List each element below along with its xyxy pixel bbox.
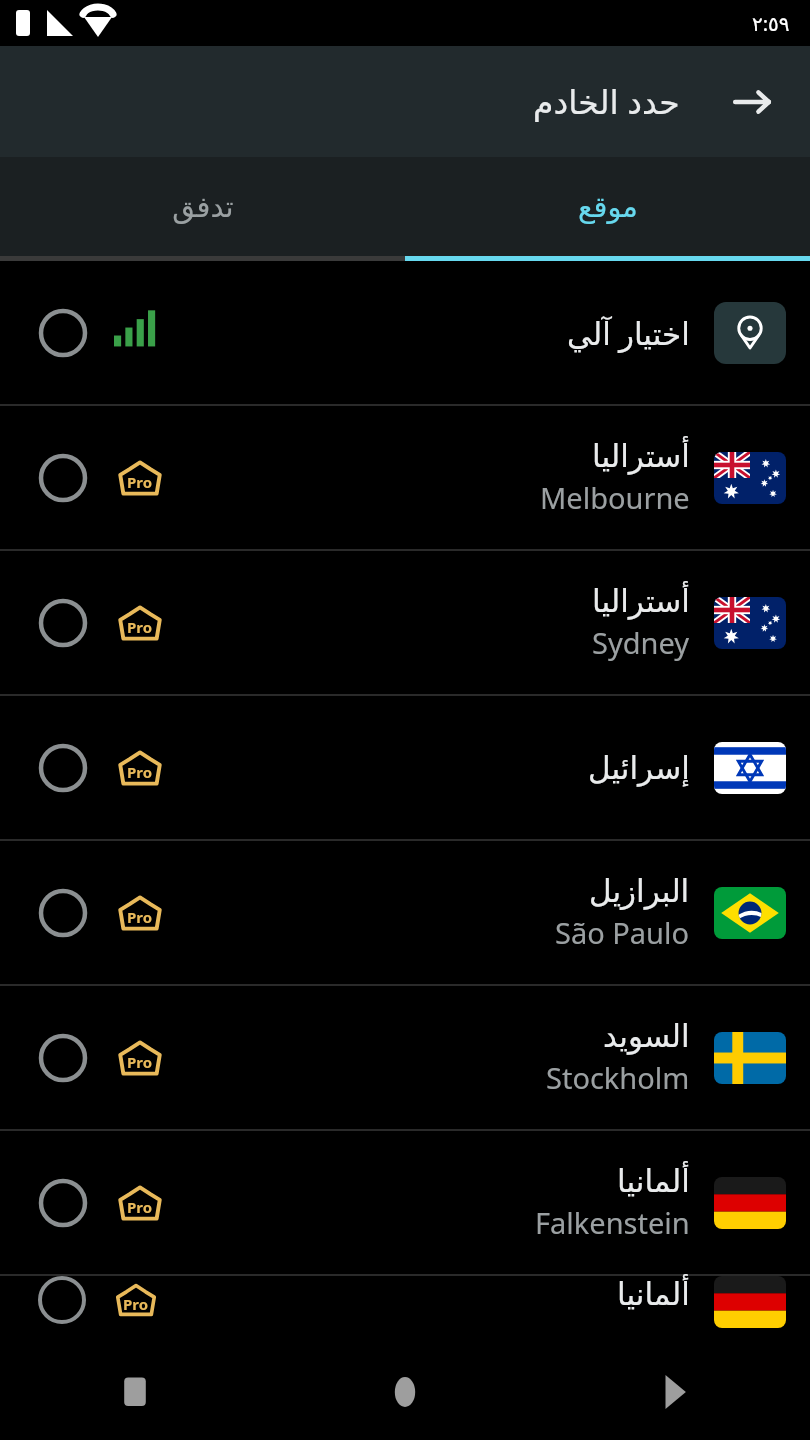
staticText: Sydney	[592, 623, 690, 662]
button[interactable]: تدفق	[0, 157, 405, 256]
button[interactable]: Back	[540, 1344, 810, 1440]
button[interactable]: Pro	[0, 696, 810, 839]
staticText: Pro	[123, 1294, 149, 1314]
button[interactable]: موقع	[405, 157, 810, 256]
staticText: موقع	[578, 190, 638, 224]
button[interactable]: Back	[720, 70, 784, 134]
button[interactable]: Pro	[0, 986, 810, 1129]
staticText: Pro	[127, 617, 153, 637]
button[interactable]: Home	[270, 1344, 540, 1440]
button[interactable]: اختيار آلي	[0, 261, 810, 404]
button[interactable]: Pro	[0, 1276, 810, 1336]
staticText: Pro	[127, 762, 153, 782]
staticText: أستراليا	[592, 583, 690, 619]
staticText: أستراليا	[592, 438, 690, 474]
button[interactable]: Pro	[0, 551, 810, 694]
staticText: Stockholm	[546, 1058, 690, 1097]
staticText: Melbourne	[540, 478, 690, 517]
staticText: ألمانيا	[617, 1276, 690, 1312]
staticText: تدفق	[172, 190, 234, 224]
staticText: السويد	[603, 1018, 690, 1054]
staticText: Pro	[127, 472, 153, 492]
staticText: إسرائيل	[588, 750, 690, 786]
staticText: ٢:٥٩	[752, 10, 790, 37]
button[interactable]: Recent apps	[0, 1344, 270, 1440]
staticText: اختيار آلي	[567, 312, 690, 354]
staticText: Falkenstein	[535, 1203, 690, 1242]
button[interactable]: Pro	[0, 406, 810, 549]
staticText: البرازيل	[589, 873, 690, 909]
staticText: ألمانيا	[617, 1163, 690, 1199]
staticText: Pro	[127, 1197, 153, 1217]
staticText: São Paulo	[555, 913, 690, 952]
button[interactable]: Pro	[0, 1131, 810, 1274]
staticText: Pro	[127, 1052, 153, 1072]
staticText: حدد الخادم	[533, 79, 680, 124]
button[interactable]: Pro	[0, 841, 810, 984]
staticText: Pro	[127, 907, 153, 927]
